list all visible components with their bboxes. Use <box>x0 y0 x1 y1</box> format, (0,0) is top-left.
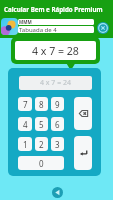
button[interactable]: Install <box>97 22 109 34</box>
button[interactable]: 6 <box>51 117 64 131</box>
button[interactable]: 4 <box>18 117 32 131</box>
button[interactable]: Back <box>52 187 63 198</box>
staticText: 8 <box>39 99 44 110</box>
staticText: 7 <box>23 99 28 110</box>
button[interactable]: 3 <box>51 137 64 151</box>
staticText: 0 <box>39 158 44 169</box>
button[interactable]: 8 <box>35 97 48 111</box>
staticText: Calcular Bem e Rápido Premium <box>4 5 103 13</box>
button[interactable]: 2 <box>35 137 48 151</box>
button[interactable]: 4 x 7 = 24 <box>19 76 92 90</box>
staticText: 1 <box>23 139 28 150</box>
button[interactable]: 9 <box>51 97 64 111</box>
staticText: 4 x 7 = 28 <box>32 44 79 58</box>
button[interactable]: Calcular Bem e Rápido Premium <box>0 0 113 17</box>
staticText: Tabuada de 4 <box>19 26 57 33</box>
button[interactable]: 7 <box>18 97 32 111</box>
button[interactable]: 0 <box>18 156 64 170</box>
button[interactable]: Enter <box>74 136 92 170</box>
staticText: 3 <box>55 139 60 150</box>
staticText: 9 <box>55 99 60 110</box>
staticText: 4 x 7 = 24 <box>40 78 72 88</box>
staticText: MMM <box>19 19 32 25</box>
staticText: 6 <box>55 119 60 130</box>
button[interactable]: 5 <box>35 117 48 131</box>
button[interactable]: App icon <box>1 18 18 35</box>
button[interactable]: 1 <box>18 137 32 151</box>
button[interactable]: 4 x 7 = 28 <box>15 41 96 60</box>
button[interactable]: Backspace <box>74 97 92 130</box>
staticText: 2 <box>39 139 44 150</box>
button[interactable]: Tabuada de 4 <box>18 26 94 33</box>
staticText: 5 <box>39 119 44 130</box>
staticText: 4 <box>23 119 28 130</box>
